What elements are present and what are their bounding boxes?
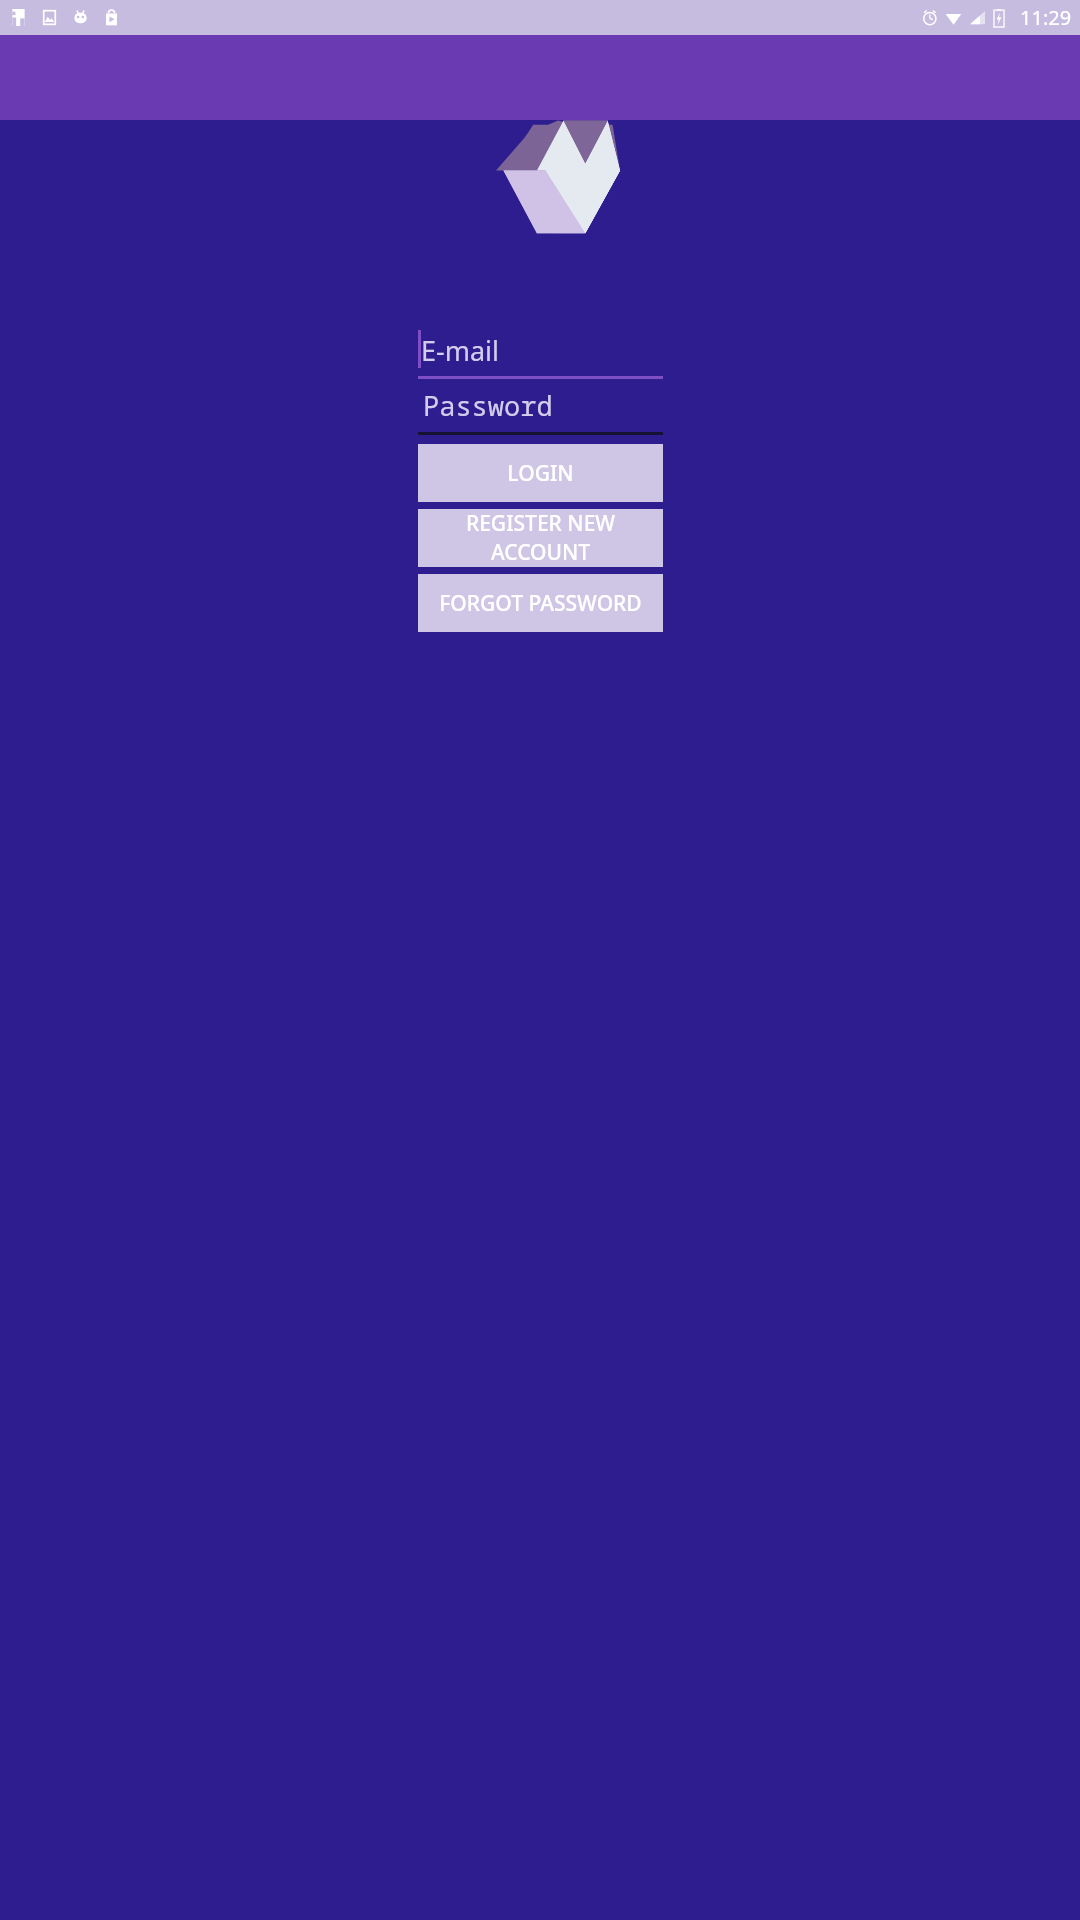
staticText: REGISTER NEW ACCOUNT [418, 509, 663, 567]
button[interactable]: FORGOT PASSWORD [418, 574, 663, 632]
button[interactable]: REGISTER NEW ACCOUNT [418, 509, 663, 567]
staticText: Password [423, 387, 553, 424]
button[interactable]: LOGIN [418, 444, 663, 502]
staticText: LOGIN [507, 459, 574, 488]
staticText: E-mail [421, 332, 500, 369]
button[interactable]: Password [418, 380, 663, 435]
staticText: FORGOT PASSWORD [439, 589, 642, 618]
staticText: 11:29 [1020, 4, 1072, 31]
button[interactable]: E-mail [418, 322, 663, 379]
